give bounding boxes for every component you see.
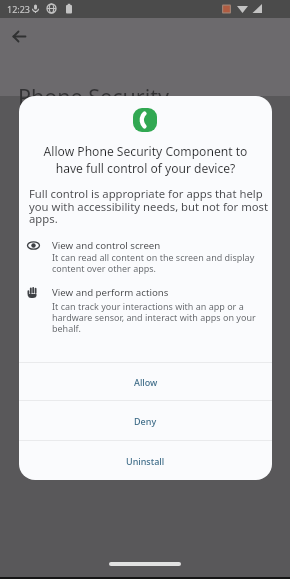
staticText: 12:23 <box>7 3 31 15</box>
button[interactable] <box>7 24 31 48</box>
button[interactable]: Deny <box>19 401 272 440</box>
staticText: Deny <box>134 415 157 427</box>
staticText: Full control is appropriate for apps tha… <box>29 186 269 226</box>
button[interactable]: Uninstall <box>19 441 272 480</box>
staticText: Phone Security <box>18 82 169 111</box>
staticText: It can read all content on the screen an… <box>52 251 255 275</box>
staticText: Allow <box>134 376 158 388</box>
button[interactable]: Allow <box>19 363 272 400</box>
staticText: It can track your interactions with an a… <box>52 300 256 335</box>
staticText: Allow Phone Security Component to have f… <box>19 143 272 177</box>
staticText: Uninstall <box>126 455 165 467</box>
staticText: View and perform actions <box>52 286 169 299</box>
staticText: View and control screen <box>52 239 161 252</box>
